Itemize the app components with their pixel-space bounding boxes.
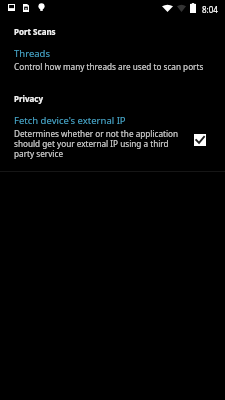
- staticText: Privacy: [14, 93, 43, 104]
- staticText: Threads: [14, 47, 50, 60]
- staticText: Port Scans: [14, 26, 56, 37]
- staticText: Control how many threads are used to sca…: [14, 61, 204, 72]
- staticText: Determines whether or not the applicatio…: [14, 128, 188, 159]
- button[interactable]: Toggle fetch external IP: [194, 134, 206, 146]
- staticText: Fetch device's external IP: [14, 114, 126, 127]
- button[interactable]: Fetch device's external IP: [0, 114, 225, 159]
- button[interactable]: Threads: [0, 47, 225, 72]
- staticText: 8:04: [202, 4, 218, 15]
